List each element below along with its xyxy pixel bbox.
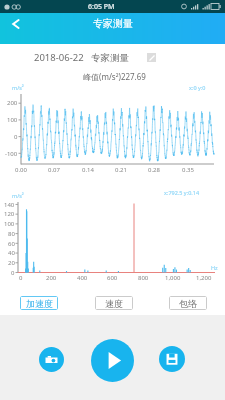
button[interactable]: Play — [91, 339, 134, 382]
staticText: m/s² — [12, 84, 24, 91]
staticText: x:0 y:0 — [189, 84, 206, 91]
staticText: 600 — [107, 274, 118, 282]
staticText: 0 — [14, 133, 18, 141]
staticText: 100 — [4, 220, 15, 228]
staticText: 400 — [77, 274, 88, 282]
button[interactable]: 加速度 — [20, 296, 58, 310]
staticText: 0.21 — [115, 166, 127, 174]
staticText: 80 — [8, 230, 15, 238]
staticText: Hz — [211, 264, 218, 271]
staticText: 0.07 — [48, 166, 60, 174]
staticText: 0 — [19, 274, 23, 282]
staticText: 20 — [8, 259, 15, 267]
button[interactable]: Capture — [39, 347, 64, 372]
staticText: 峰值(m/s²)227.69 — [83, 71, 146, 82]
staticText: 200 — [7, 99, 18, 107]
staticText: 100 — [7, 116, 18, 124]
staticText: 速度 — [105, 298, 123, 309]
staticText: -100 — [5, 150, 18, 158]
staticText: 加速度 — [26, 298, 53, 309]
staticText: 800 — [138, 274, 149, 282]
staticText: 60 — [8, 240, 15, 248]
staticText: 120 — [4, 210, 15, 218]
staticText: 0.28 — [148, 166, 160, 174]
staticText: 专家测量 — [91, 52, 129, 64]
staticText: 140 — [4, 201, 15, 209]
button[interactable]: Back — [5, 13, 26, 34]
staticText: m/s² — [12, 192, 24, 199]
staticText: 200 — [46, 274, 57, 282]
staticText: 1,200 — [196, 274, 212, 282]
staticText: x:792.5 y:0.14 — [164, 189, 200, 196]
staticText: 2018-06-22 — [34, 51, 84, 64]
staticText: 0.00 — [15, 166, 27, 174]
staticText: 0 — [11, 269, 15, 277]
staticText: 专家测量 — [93, 17, 133, 30]
staticText: 包络 — [179, 298, 197, 309]
staticText: 0.35 — [182, 166, 194, 174]
staticText: 40 — [8, 249, 15, 257]
button[interactable]: 速度 — [95, 296, 133, 310]
staticText: 1,000 — [165, 274, 181, 282]
button[interactable]: 包络 — [169, 296, 207, 310]
button[interactable]: Save — [159, 346, 185, 372]
staticText: 0.14 — [82, 166, 94, 174]
staticText: 6:05 PM — [88, 2, 115, 12]
button[interactable]: Edit — [147, 53, 156, 62]
